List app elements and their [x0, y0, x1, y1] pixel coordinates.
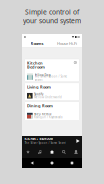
staticText: Mellow Underworld	[34, 95, 62, 99]
staticText: your sound system	[23, 16, 81, 25]
staticText: Living Room	[27, 84, 51, 89]
button[interactable]: Dining Room	[25, 102, 79, 120]
button[interactable]: Back	[22, 161, 42, 165]
staticText: KITCHEN + BEDROOM	[24, 137, 53, 141]
staticText: Yaeji Remix	[34, 112, 51, 116]
staticText: House Hi-Fi	[57, 41, 77, 46]
button[interactable]: Rooms	[22, 40, 52, 47]
staticText: The Silver Spoon / Some Secret	[34, 75, 67, 82]
staticText: Simple control of	[25, 7, 79, 16]
staticText: Dining Room	[27, 103, 53, 108]
button[interactable]: Living Room	[25, 83, 79, 100]
staticText: Bedroom	[27, 64, 45, 70]
button[interactable]: Account	[70, 150, 82, 154]
button[interactable]: Music	[34, 150, 46, 154]
staticText: Kitchen	[27, 60, 43, 66]
button[interactable]: Favorites	[22, 150, 34, 154]
button[interactable]: Kitchen	[25, 59, 79, 81]
staticText: Raingurl / Kaytranada	[34, 115, 62, 119]
button[interactable]: House Hi-Fi	[52, 40, 82, 47]
button[interactable]: Home	[42, 161, 62, 164]
button[interactable]: Rooms	[46, 150, 58, 154]
button[interactable]: KITCHEN + BEDROOM	[22, 136, 82, 146]
staticText: Spotify	[34, 92, 43, 96]
button[interactable]: Search	[58, 150, 70, 154]
staticText: Rooms	[30, 41, 43, 46]
button[interactable]: Recents	[62, 162, 82, 164]
staticText: The Silver Spoon / Some Secret	[24, 141, 66, 145]
staticText: Yellow Days	[34, 73, 50, 77]
